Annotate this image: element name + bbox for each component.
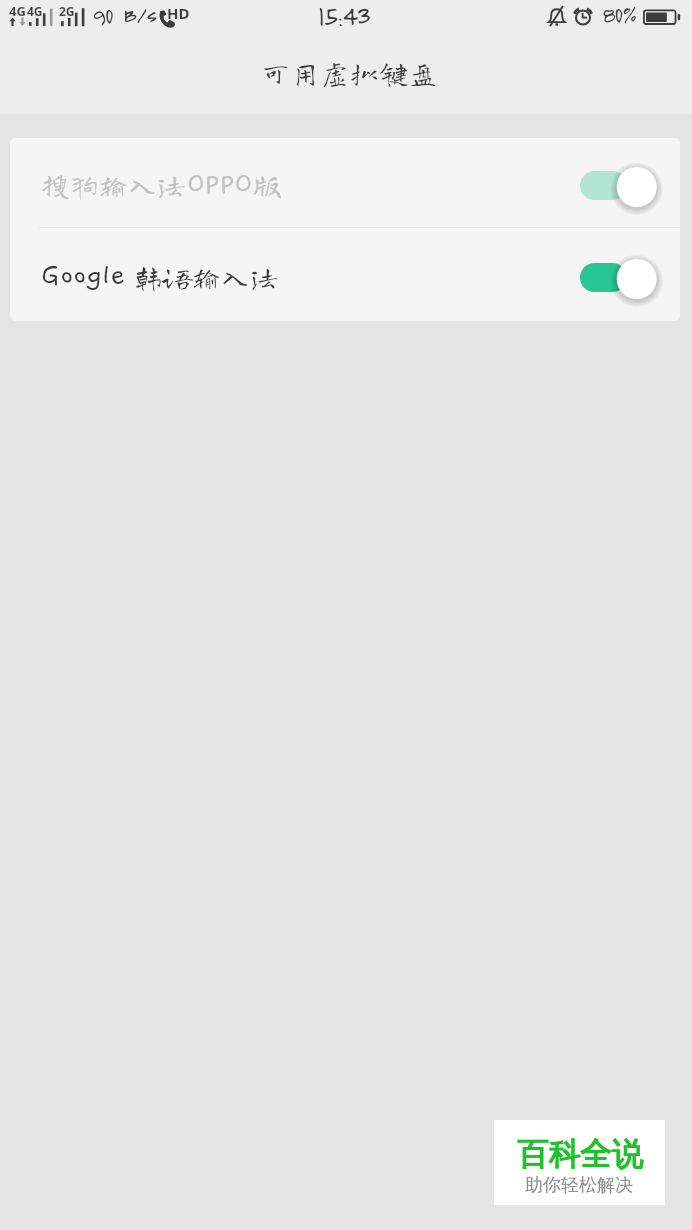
staticText: 80% (602, 0, 636, 28)
staticText: 15:43 (318, 0, 370, 32)
staticText: HD (167, 3, 190, 23)
staticText: 版 (253, 170, 283, 199)
staticText: 助你轻松解决 (525, 1174, 633, 1197)
staticText: 2G (59, 3, 75, 19)
staticText: 搜狗输入法 (41, 170, 187, 199)
staticText: 4G (27, 3, 43, 19)
staticText: 韩语输入法 (134, 262, 280, 291)
button[interactable]: 搜狗输入法 (10, 138, 680, 227)
staticText: 4G (9, 2, 26, 20)
staticText: 90 (92, 0, 113, 29)
button[interactable]: Toggle keyboard (580, 253, 657, 297)
staticText: Google (41, 259, 126, 290)
staticText: B/s (123, 0, 156, 27)
button[interactable]: Google (10, 228, 680, 321)
staticText: 可用虚拟键盘 (261, 58, 439, 87)
button[interactable]: Toggle keyboard (580, 161, 657, 205)
staticText: 百科全说 (517, 1135, 643, 1175)
staticText: OPPO (187, 168, 253, 199)
button[interactable]: Watermark (494, 1120, 665, 1205)
